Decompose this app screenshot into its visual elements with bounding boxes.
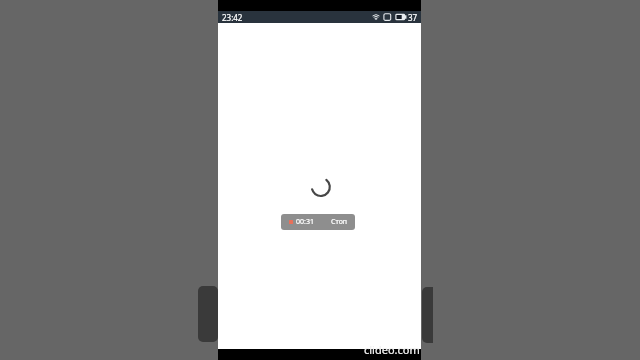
button[interactable]: 00:31 xyxy=(281,214,355,230)
staticText: 37 xyxy=(408,12,418,23)
staticText: 00:31 xyxy=(296,217,314,227)
other: Wi-Fi, storage and battery status xyxy=(372,11,408,23)
staticText: 23:42 xyxy=(222,12,243,23)
staticText: Стоп xyxy=(331,217,348,227)
staticText: clideo.com xyxy=(364,342,420,357)
other: Loading xyxy=(308,175,333,200)
